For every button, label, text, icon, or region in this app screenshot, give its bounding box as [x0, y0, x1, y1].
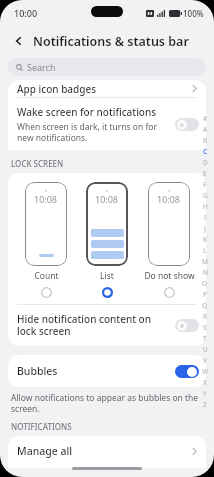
- staticText: NOTIFICATIONS: [11, 421, 72, 432]
- button[interactable]: Option: [140, 285, 198, 299]
- staticText: When screen is dark, it turns on for new…: [17, 121, 169, 143]
- staticText: Notifications & status bar: [33, 33, 189, 50]
- staticText: X: [203, 378, 207, 387]
- staticText: Z: [203, 400, 207, 409]
- staticText: J: [204, 224, 206, 233]
- staticText: Do not show: [144, 270, 195, 282]
- staticText: Search: [27, 61, 56, 73]
- staticText: R: [203, 312, 208, 321]
- button[interactable]: Option: [17, 285, 75, 299]
- staticText: E: [203, 169, 207, 178]
- button[interactable]: 10:08: [78, 182, 136, 282]
- staticText: 10:00: [14, 7, 38, 19]
- staticText: W: [202, 367, 209, 376]
- staticText: Count: [34, 270, 59, 282]
- staticText: I: [204, 213, 207, 222]
- staticText: 10:08: [34, 193, 58, 205]
- staticText: 100%: [183, 8, 204, 19]
- staticText: Q: [202, 301, 208, 310]
- staticText: N: [203, 268, 208, 277]
- staticText: H: [203, 202, 208, 211]
- button[interactable]: Wake screen for notifications: [8, 98, 206, 150]
- staticText: S: [203, 323, 207, 332]
- staticText: D: [203, 158, 208, 167]
- button[interactable]: List selected: [78, 285, 136, 299]
- staticText: 10:08: [95, 193, 119, 205]
- staticText: B: [203, 136, 208, 145]
- staticText: F: [203, 180, 207, 189]
- staticText: 10:08: [157, 193, 181, 205]
- staticText: Manage all: [17, 444, 192, 458]
- staticText: C: [203, 147, 208, 156]
- button[interactable]: Bubbles: [8, 355, 206, 387]
- button[interactable]: Hide notification content on lock screen: [8, 305, 206, 346]
- staticText: O: [202, 279, 208, 288]
- staticText: Allow notifications to appear as bubbles…: [11, 392, 203, 414]
- staticText: L: [203, 246, 207, 255]
- staticText: M: [202, 257, 208, 266]
- staticText: Bubbles: [17, 364, 175, 378]
- staticText: A: [203, 125, 208, 134]
- button[interactable]: Back: [8, 30, 30, 52]
- staticText: V: [203, 356, 207, 365]
- button[interactable]: Toggle on: [175, 365, 199, 378]
- button[interactable]: App icon badges: [8, 80, 206, 97]
- button[interactable]: Manage all: [8, 436, 206, 468]
- button[interactable]: 10:08: [140, 182, 198, 282]
- staticText: Wake screen for notifications: [17, 105, 157, 119]
- staticText: LOCK SCREEN: [11, 158, 64, 169]
- button[interactable]: Toggle off: [175, 319, 199, 332]
- staticText: T: [203, 334, 207, 343]
- button[interactable]: Search: [8, 58, 206, 76]
- staticText: K: [203, 235, 208, 244]
- staticText: G: [203, 191, 208, 200]
- button[interactable]: Toggle off: [175, 118, 199, 131]
- staticText: App icon badges: [17, 82, 192, 96]
- staticText: #: [203, 114, 208, 123]
- button[interactable]: 10:08: [17, 182, 75, 282]
- staticText: Y: [203, 389, 207, 398]
- staticText: List: [100, 270, 114, 282]
- staticText: P: [203, 290, 207, 299]
- staticText: U: [203, 345, 208, 354]
- staticText: Hide notification content on lock screen: [17, 312, 169, 338]
